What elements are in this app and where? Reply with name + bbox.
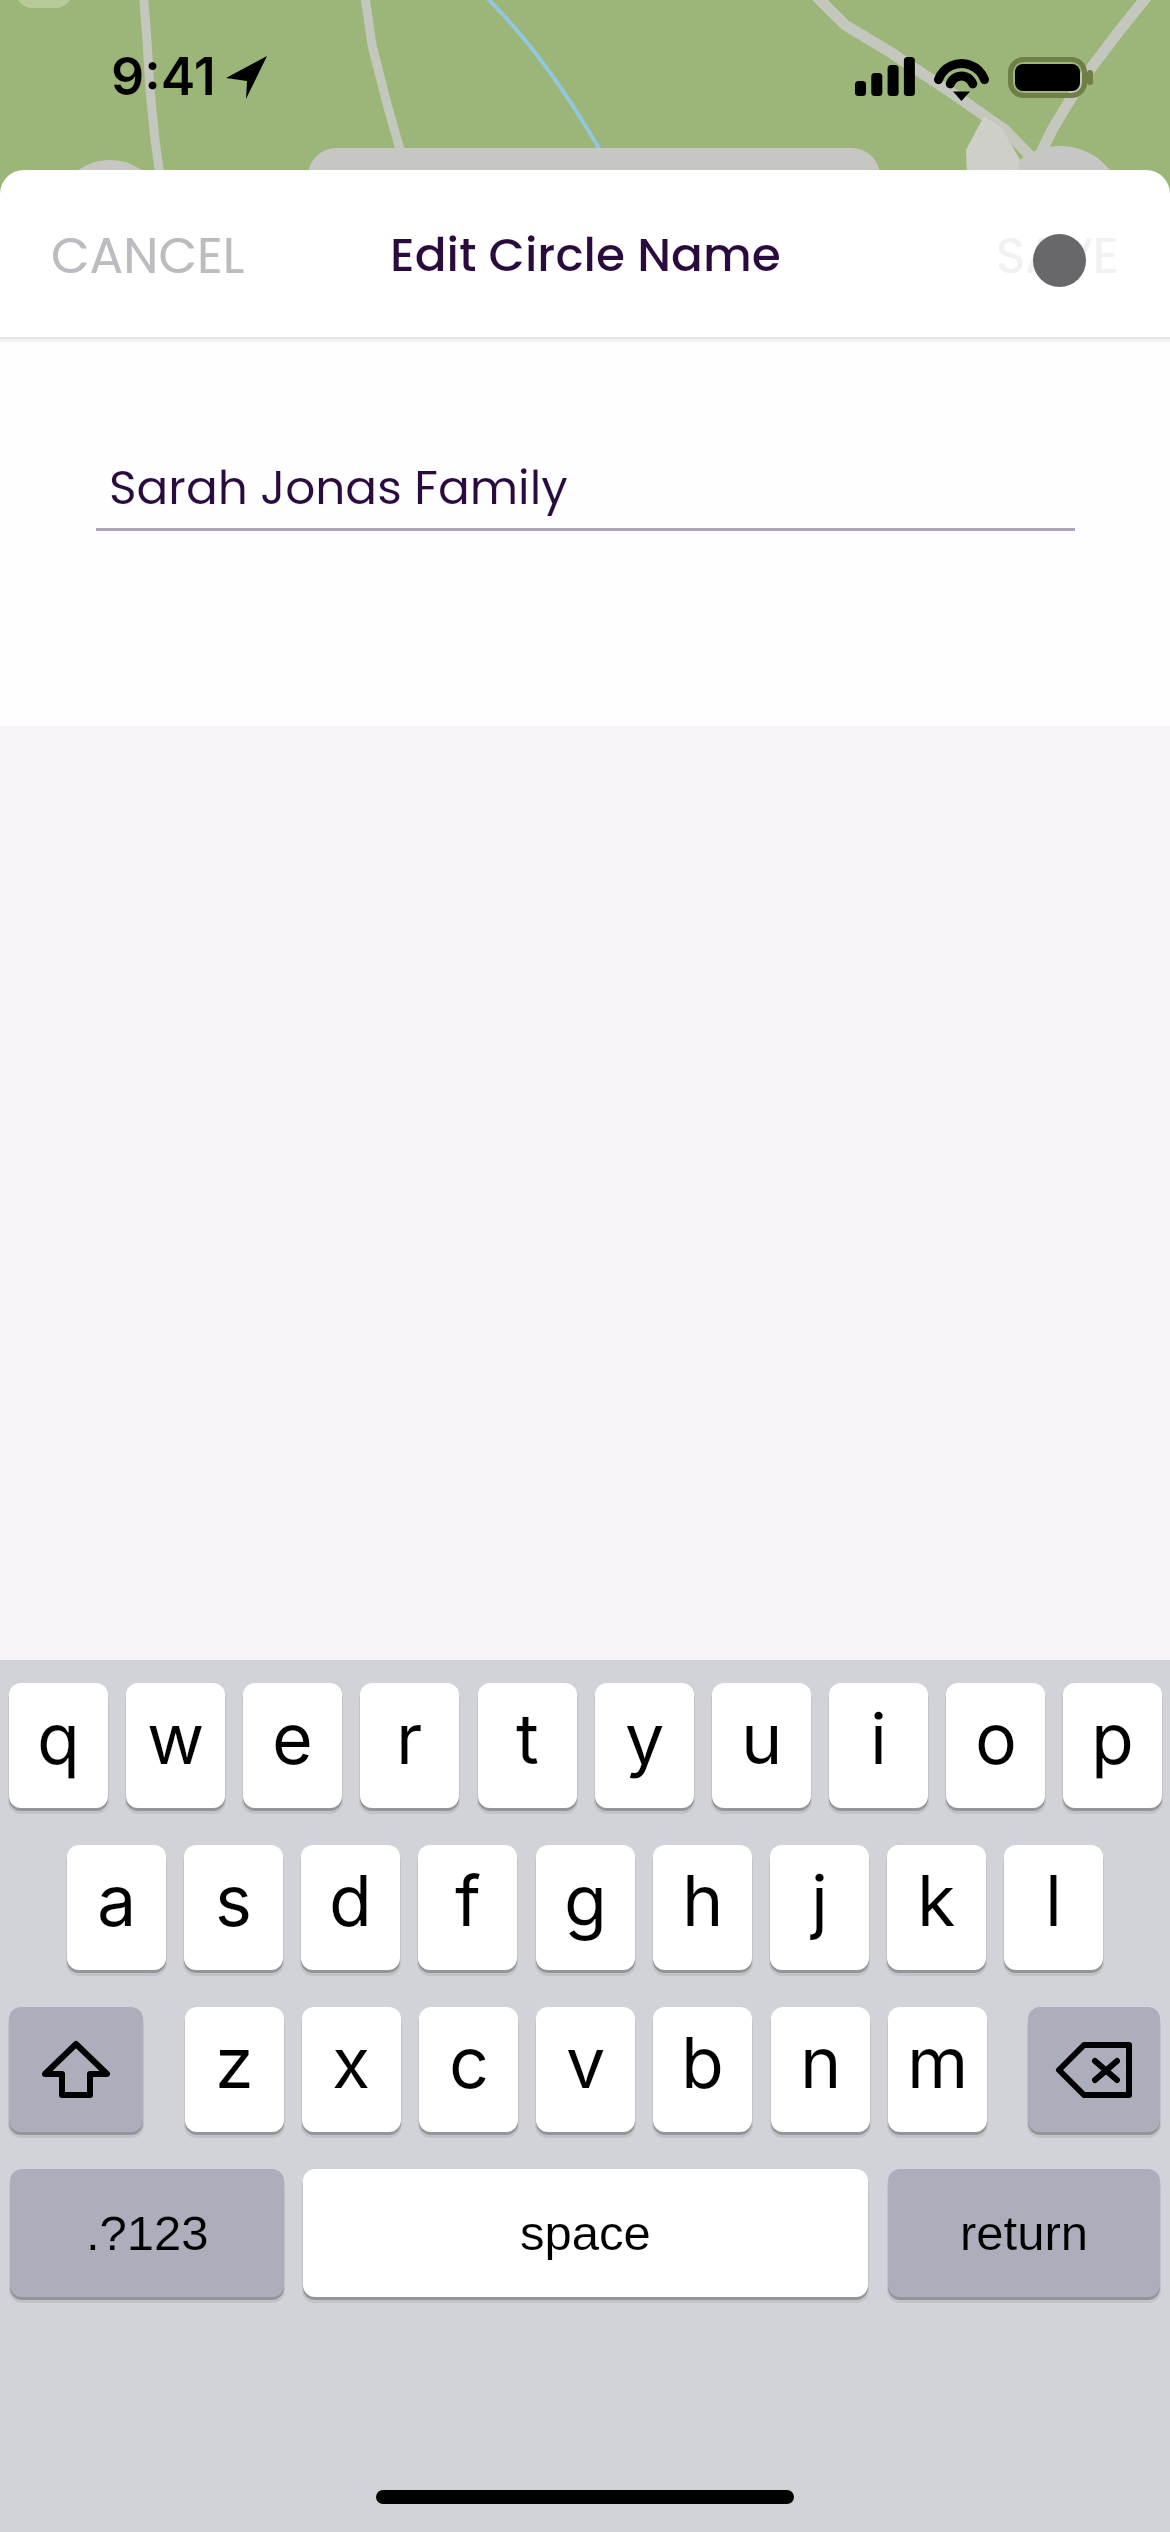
button[interactable]: f [418,1845,517,1970]
staticText: v [566,2020,606,2105]
button[interactable]: v [536,2007,635,2132]
button[interactable]: x [302,2007,401,2132]
button[interactable]: n [771,2007,870,2132]
button[interactable]: d [301,1845,400,1970]
staticText: y [625,1696,665,1781]
staticText: a [97,1858,137,1943]
button[interactable]: b [653,2007,752,2132]
staticText: c [449,2020,489,2105]
button[interactable]: return [888,2169,1160,2297]
button[interactable]: w [126,1683,225,1808]
staticText: e [272,1696,313,1781]
staticText: w [147,1696,205,1781]
staticText: CANCEL [51,221,245,291]
button[interactable]: .?123 [10,2169,284,2297]
button[interactable]: Backspace [1028,2007,1160,2132]
button[interactable]: c [419,2007,518,2132]
button[interactable]: CANCEL [0,187,285,321]
staticText: o [975,1696,1017,1781]
staticText: s [215,1858,252,1943]
staticText: p [1091,1696,1134,1781]
button[interactable]: a [67,1845,166,1970]
staticText: m [907,2020,969,2105]
button[interactable]: k [887,1845,986,1970]
staticText: SAVE [996,221,1119,291]
staticText: Edit Circle Name [390,222,781,288]
staticText: h [682,1858,724,1943]
button[interactable]: z [185,2007,284,2132]
staticText: t [516,1696,539,1781]
button[interactable]: e [243,1683,342,1808]
staticText: g [564,1858,607,1943]
staticText: k [917,1858,956,1943]
staticText: u [741,1696,783,1781]
button[interactable]: space [303,2169,868,2297]
staticText: f [455,1858,481,1943]
staticText: n [800,2020,842,2105]
button[interactable]: s [184,1845,283,1970]
staticText: b [681,2020,724,2105]
button[interactable]: m [888,2007,987,2132]
button[interactable]: y [595,1683,694,1808]
button[interactable]: j [770,1845,869,1970]
staticText: r [396,1696,423,1781]
staticText: j [811,1858,828,1943]
staticText: return [960,2206,1089,2261]
button[interactable]: l [1004,1845,1103,1970]
button[interactable]: o [946,1683,1045,1808]
button[interactable]: p [1063,1683,1162,1808]
staticText: .?123 [86,2206,209,2261]
button[interactable]: g [536,1845,635,1970]
staticText: z [215,2020,254,2105]
button[interactable]: Shift [9,2007,143,2132]
button[interactable]: r [360,1683,459,1808]
button[interactable]: q [9,1683,108,1808]
staticText: x [332,2020,371,2105]
staticText: Sarah Jonas Family [109,455,568,521]
button[interactable]: SAVE [956,187,1170,321]
staticText: d [329,1858,372,1943]
staticText: 9:41 [111,45,216,108]
staticText: i [870,1696,887,1781]
button[interactable]: u [712,1683,811,1808]
staticText: space [520,2206,651,2261]
button[interactable]: h [653,1845,752,1970]
button[interactable]: i [829,1683,928,1808]
staticText: l [1045,1858,1062,1943]
staticText: q [37,1696,80,1781]
button[interactable]: t [478,1683,577,1808]
